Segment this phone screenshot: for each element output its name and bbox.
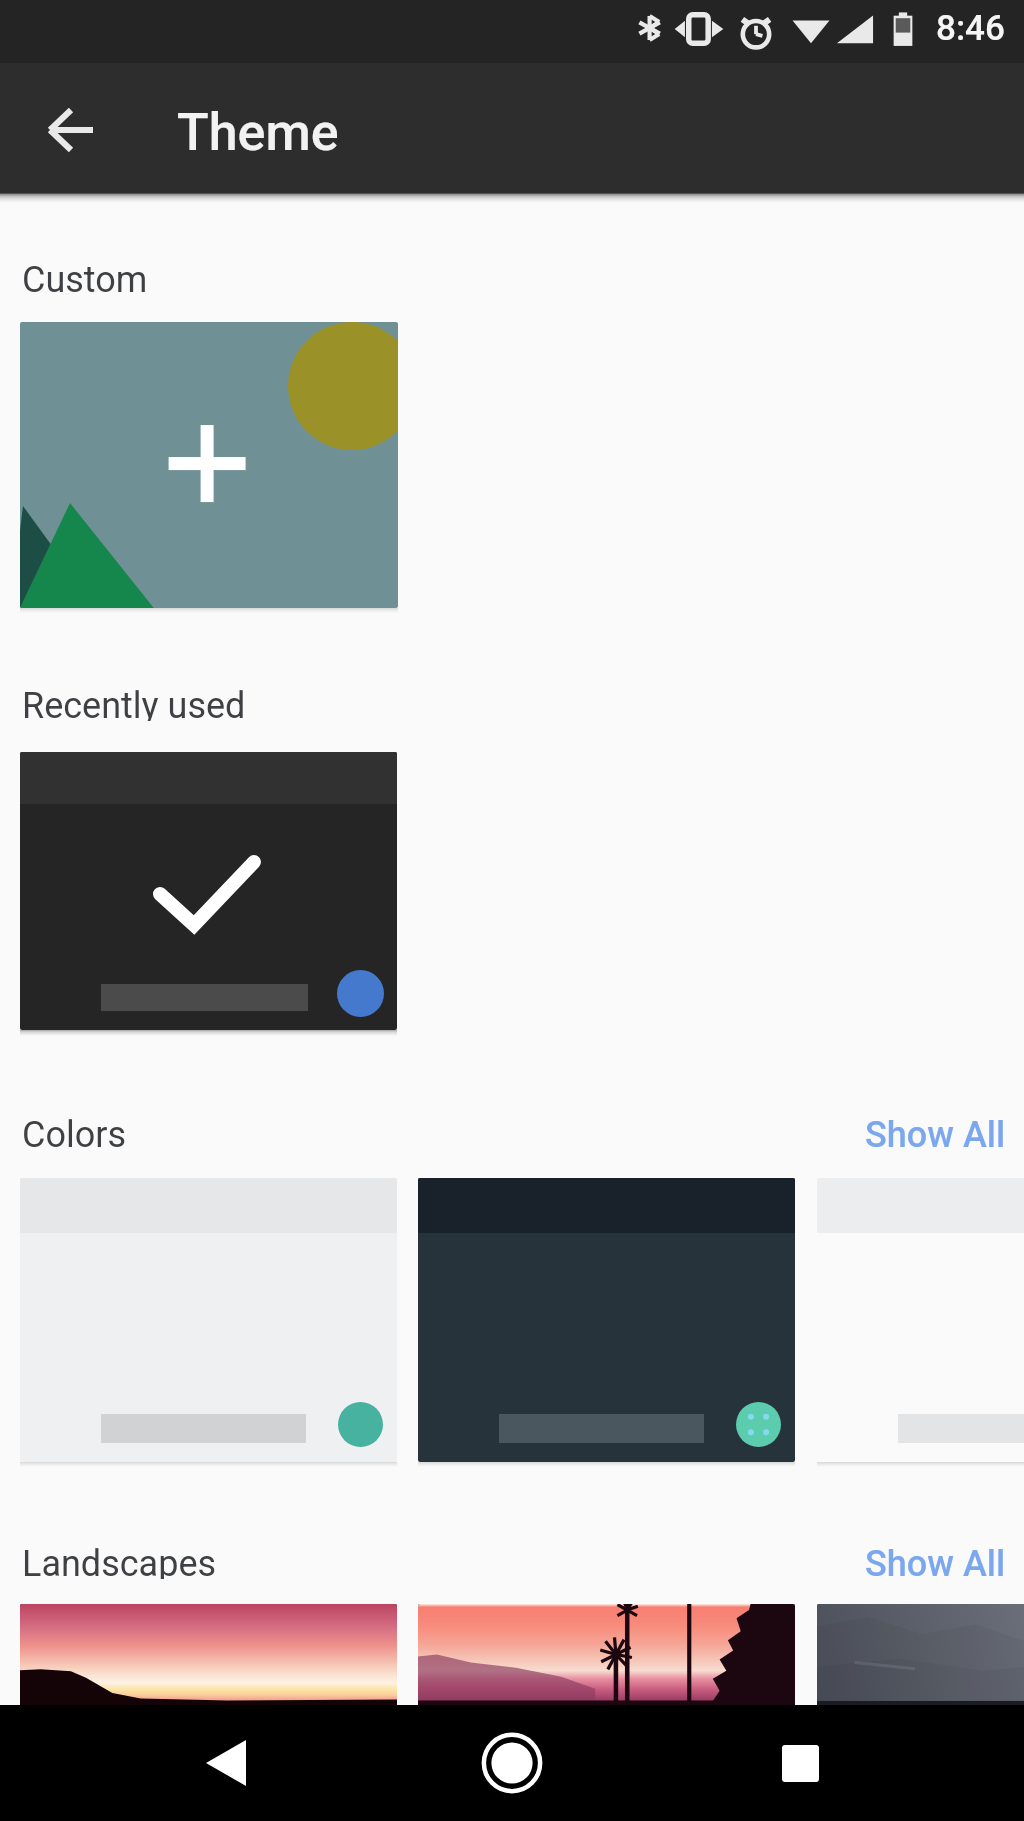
button[interactable]: Recently used theme — [20, 752, 397, 1030]
staticText: Show All — [865, 1543, 1006, 1579]
button[interactable]: Palm trees landscape theme — [418, 1604, 795, 1821]
button[interactable]: Show All — [865, 1114, 1006, 1150]
staticText: 8:46 — [936, 8, 1005, 49]
staticText: Landscapes — [22, 1543, 217, 1579]
button[interactable]: Colour theme preview — [817, 1178, 1024, 1462]
staticText: Colors — [22, 1114, 127, 1150]
button[interactable]: Show All — [865, 1543, 1006, 1579]
button[interactable]: Home — [468, 1719, 556, 1807]
button[interactable]: Create custom theme — [20, 322, 398, 608]
staticText: Recently used — [22, 685, 246, 721]
button[interactable]: Recent apps — [756, 1719, 844, 1807]
button[interactable]: Mountains landscape theme — [817, 1604, 1024, 1821]
button[interactable]: Navigate up — [30, 89, 112, 171]
staticText: Custom — [22, 259, 148, 295]
button[interactable]: Colour theme preview — [20, 1178, 397, 1462]
staticText: Theme — [177, 102, 339, 163]
button[interactable]: Colour theme preview — [418, 1178, 795, 1462]
staticText: Show All — [865, 1114, 1006, 1150]
button[interactable]: Back — [182, 1719, 270, 1807]
button[interactable]: Sunset landscape theme — [20, 1604, 397, 1821]
